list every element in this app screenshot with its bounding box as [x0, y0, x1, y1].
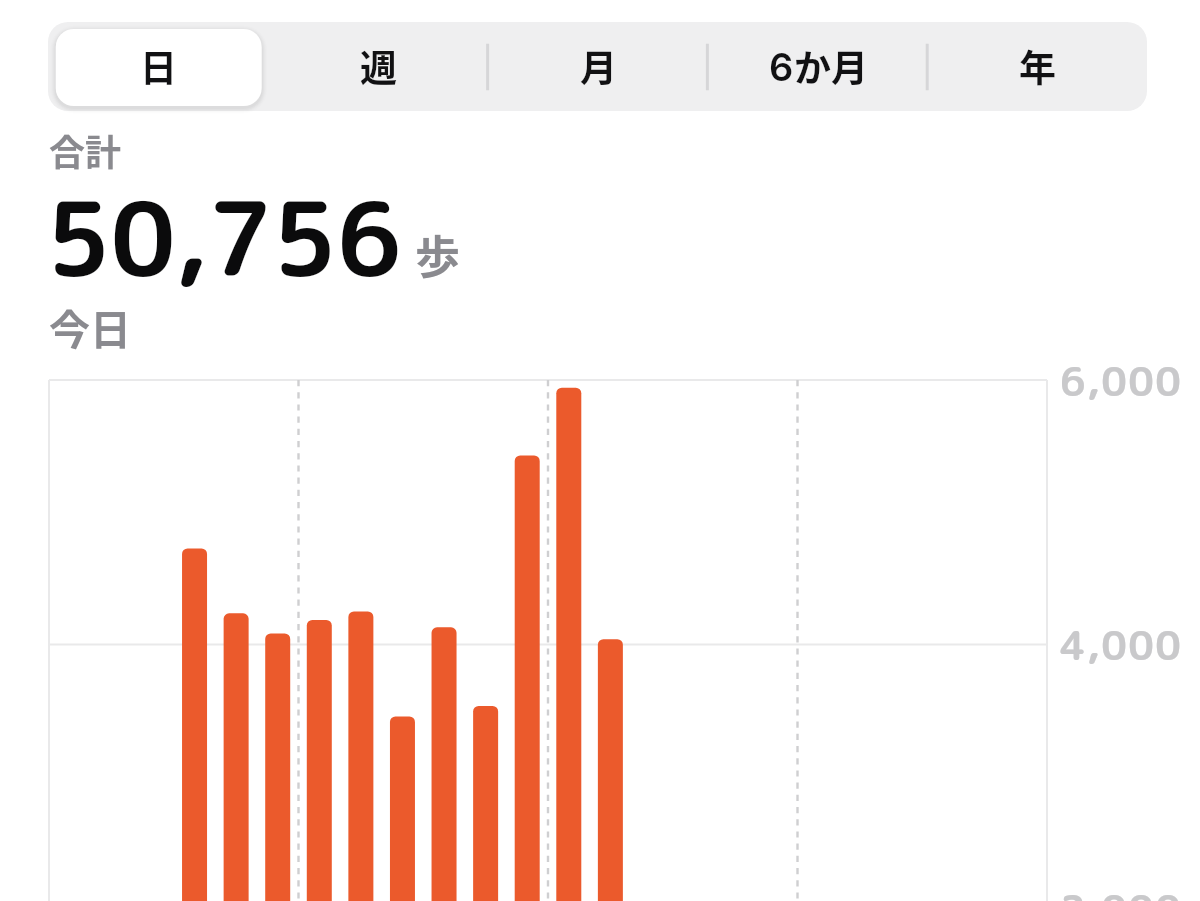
staticText: 週: [360, 39, 397, 93]
staticText: 月: [580, 39, 617, 93]
staticText: 日: [140, 39, 177, 93]
button[interactable]: 年: [928, 22, 1147, 111]
staticText: 4,000: [1060, 617, 1183, 673]
staticText: 合計: [49, 124, 122, 176]
button[interactable]: 週: [268, 22, 488, 111]
staticText: 2,000: [1060, 881, 1183, 901]
staticText: か月: [794, 39, 868, 93]
staticText: 50,756: [46, 167, 402, 308]
staticText: 今日: [49, 297, 131, 356]
button[interactable]: 月: [488, 22, 708, 111]
button[interactable]: 6: [708, 22, 928, 111]
staticText: 6: [769, 44, 794, 90]
button[interactable]: 日: [48, 22, 268, 111]
staticText: 年: [1019, 39, 1056, 93]
staticText: 6,000: [1060, 353, 1183, 409]
staticText: 歩: [415, 222, 461, 287]
other: 今日の歩数グラフ: [0, 0, 1200, 901]
